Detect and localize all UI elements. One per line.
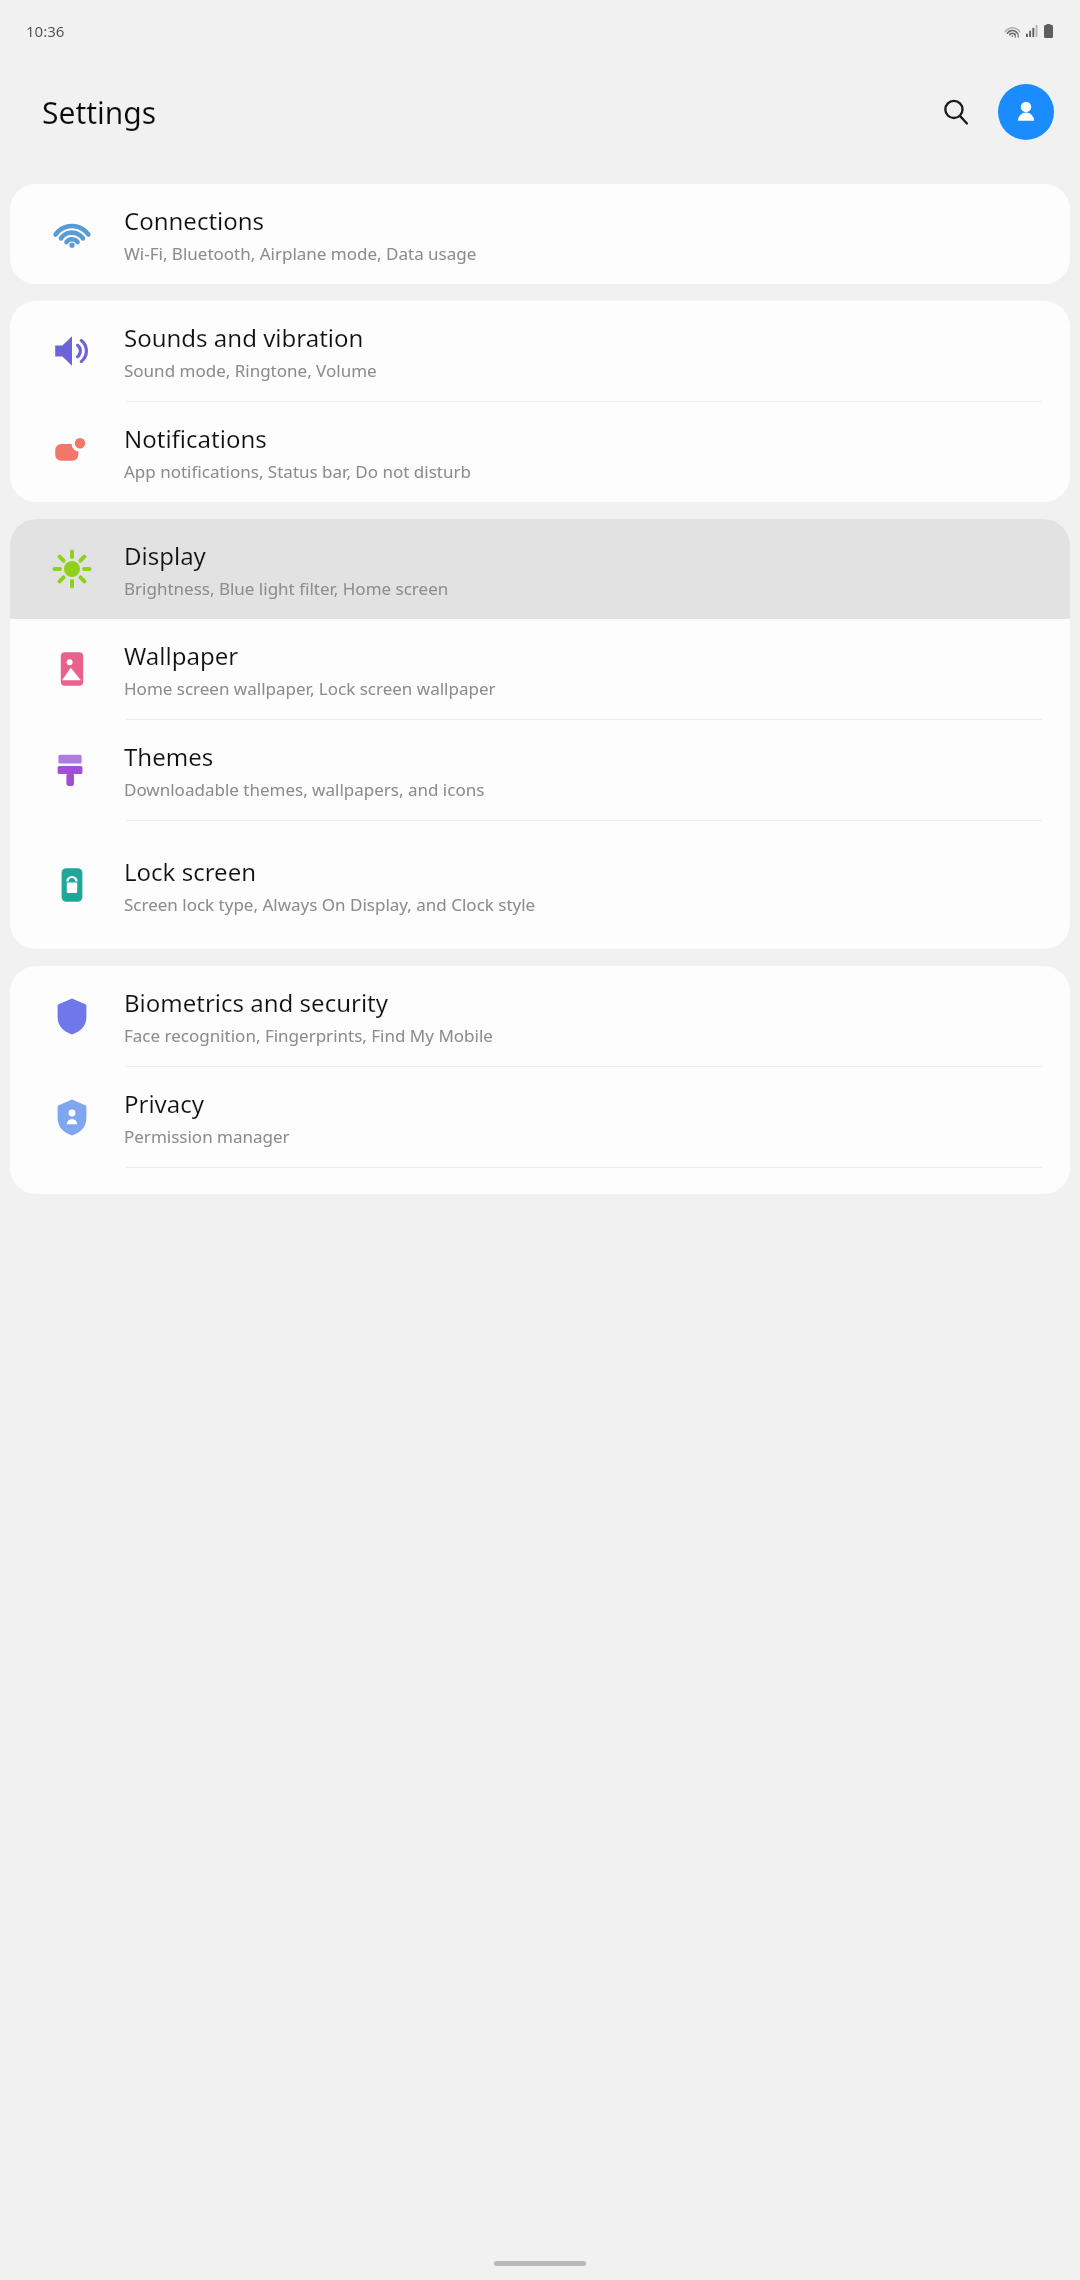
staticText: Screen lock type, Always On Display, and…: [124, 893, 536, 916]
button[interactable]: Account: [998, 84, 1054, 140]
staticText: Home screen wallpaper, Lock screen wallp…: [124, 677, 496, 700]
button[interactable]: Search: [928, 84, 984, 140]
button[interactable]: Notifications: [10, 402, 1070, 502]
staticText: Brightness, Blue light filter, Home scre…: [124, 577, 449, 600]
staticText: Sounds and vibration: [124, 321, 364, 354]
staticText: Lock screen: [124, 855, 257, 888]
staticText: Downloadable themes, wallpapers, and ico…: [124, 778, 485, 801]
button[interactable]: Lock screen: [10, 821, 1070, 949]
staticText: Settings: [42, 92, 157, 133]
staticText: Permission manager: [124, 1125, 290, 1148]
staticText: Notifications: [124, 422, 267, 455]
staticText: Privacy: [124, 1087, 205, 1120]
staticText: Face recognition, Fingerprints, Find My …: [124, 1024, 493, 1047]
staticText: Display: [124, 539, 206, 572]
button[interactable]: Connections: [10, 184, 1070, 284]
staticText: Wi-Fi, Bluetooth, Airplane mode, Data us…: [124, 242, 477, 265]
button[interactable]: Display: [10, 519, 1070, 619]
button[interactable]: Privacy: [10, 1067, 1070, 1167]
staticText: Connections: [124, 204, 265, 237]
staticText: Biometrics and security: [124, 986, 388, 1019]
staticText: App notifications, Status bar, Do not di…: [124, 460, 471, 483]
staticText: Wallpaper: [124, 639, 239, 672]
button[interactable]: Biometrics and security: [10, 966, 1070, 1066]
button[interactable]: Themes: [10, 720, 1070, 820]
staticText: Sound mode, Ringtone, Volume: [124, 359, 377, 382]
staticText: Themes: [124, 740, 214, 773]
button[interactable]: Sounds and vibration: [10, 301, 1070, 401]
button[interactable]: Wallpaper: [10, 619, 1070, 719]
staticText: 10:36: [26, 21, 65, 41]
